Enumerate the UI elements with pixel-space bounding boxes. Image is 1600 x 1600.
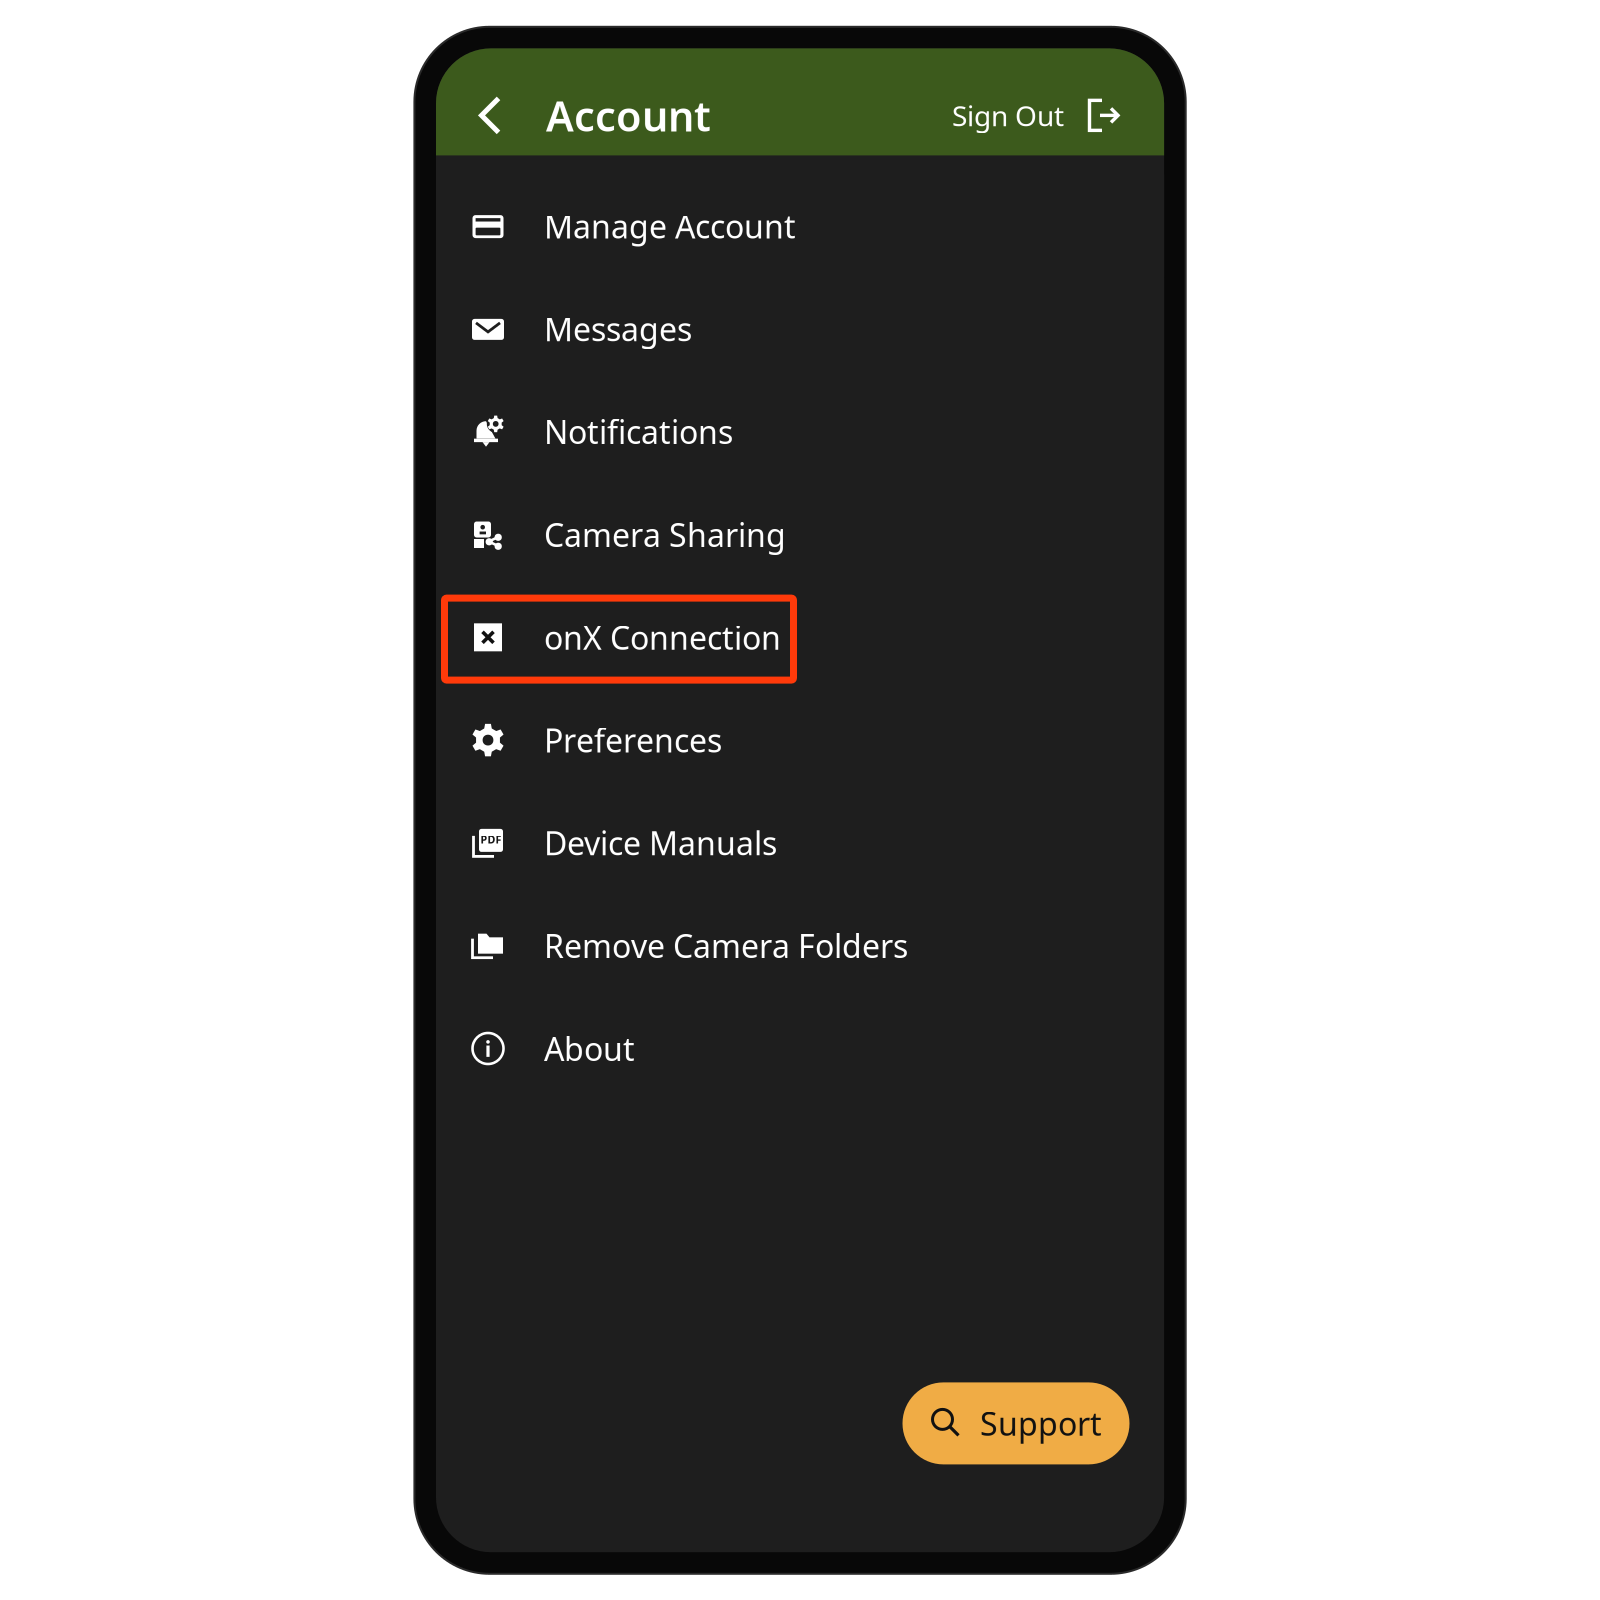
button[interactable]: Support (902, 1382, 1129, 1464)
button[interactable]: Back (458, 83, 522, 147)
button[interactable]: Manage Account (436, 175, 1164, 277)
staticText: Camera Sharing (544, 513, 786, 556)
staticText: Preferences (544, 719, 722, 761)
staticText: Notifications (544, 410, 733, 453)
button[interactable]: Sign Out (938, 83, 1136, 147)
button[interactable]: Preferences (436, 689, 1164, 791)
staticText: About (544, 1027, 635, 1070)
button[interactable]: Remove Camera Folders (436, 894, 1164, 997)
button[interactable]: Camera Sharing (436, 483, 1164, 586)
button[interactable]: About (436, 997, 1164, 1100)
staticText: Manage Account (544, 205, 796, 247)
staticText: onX Connection (544, 616, 781, 659)
button[interactable]: Notifications (436, 380, 1164, 483)
staticText: Account (546, 88, 711, 143)
button[interactable]: Messages (436, 277, 1164, 380)
staticText: Remove Camera Folders (544, 924, 908, 967)
button[interactable]: PDF (436, 791, 1164, 894)
staticText: PDF (480, 832, 501, 846)
staticText: Support (980, 1402, 1102, 1445)
staticText: Device Manuals (544, 822, 777, 864)
staticText: Sign Out (952, 97, 1064, 134)
staticText: Messages (544, 308, 692, 350)
button[interactable]: onX Connection (436, 586, 1164, 689)
